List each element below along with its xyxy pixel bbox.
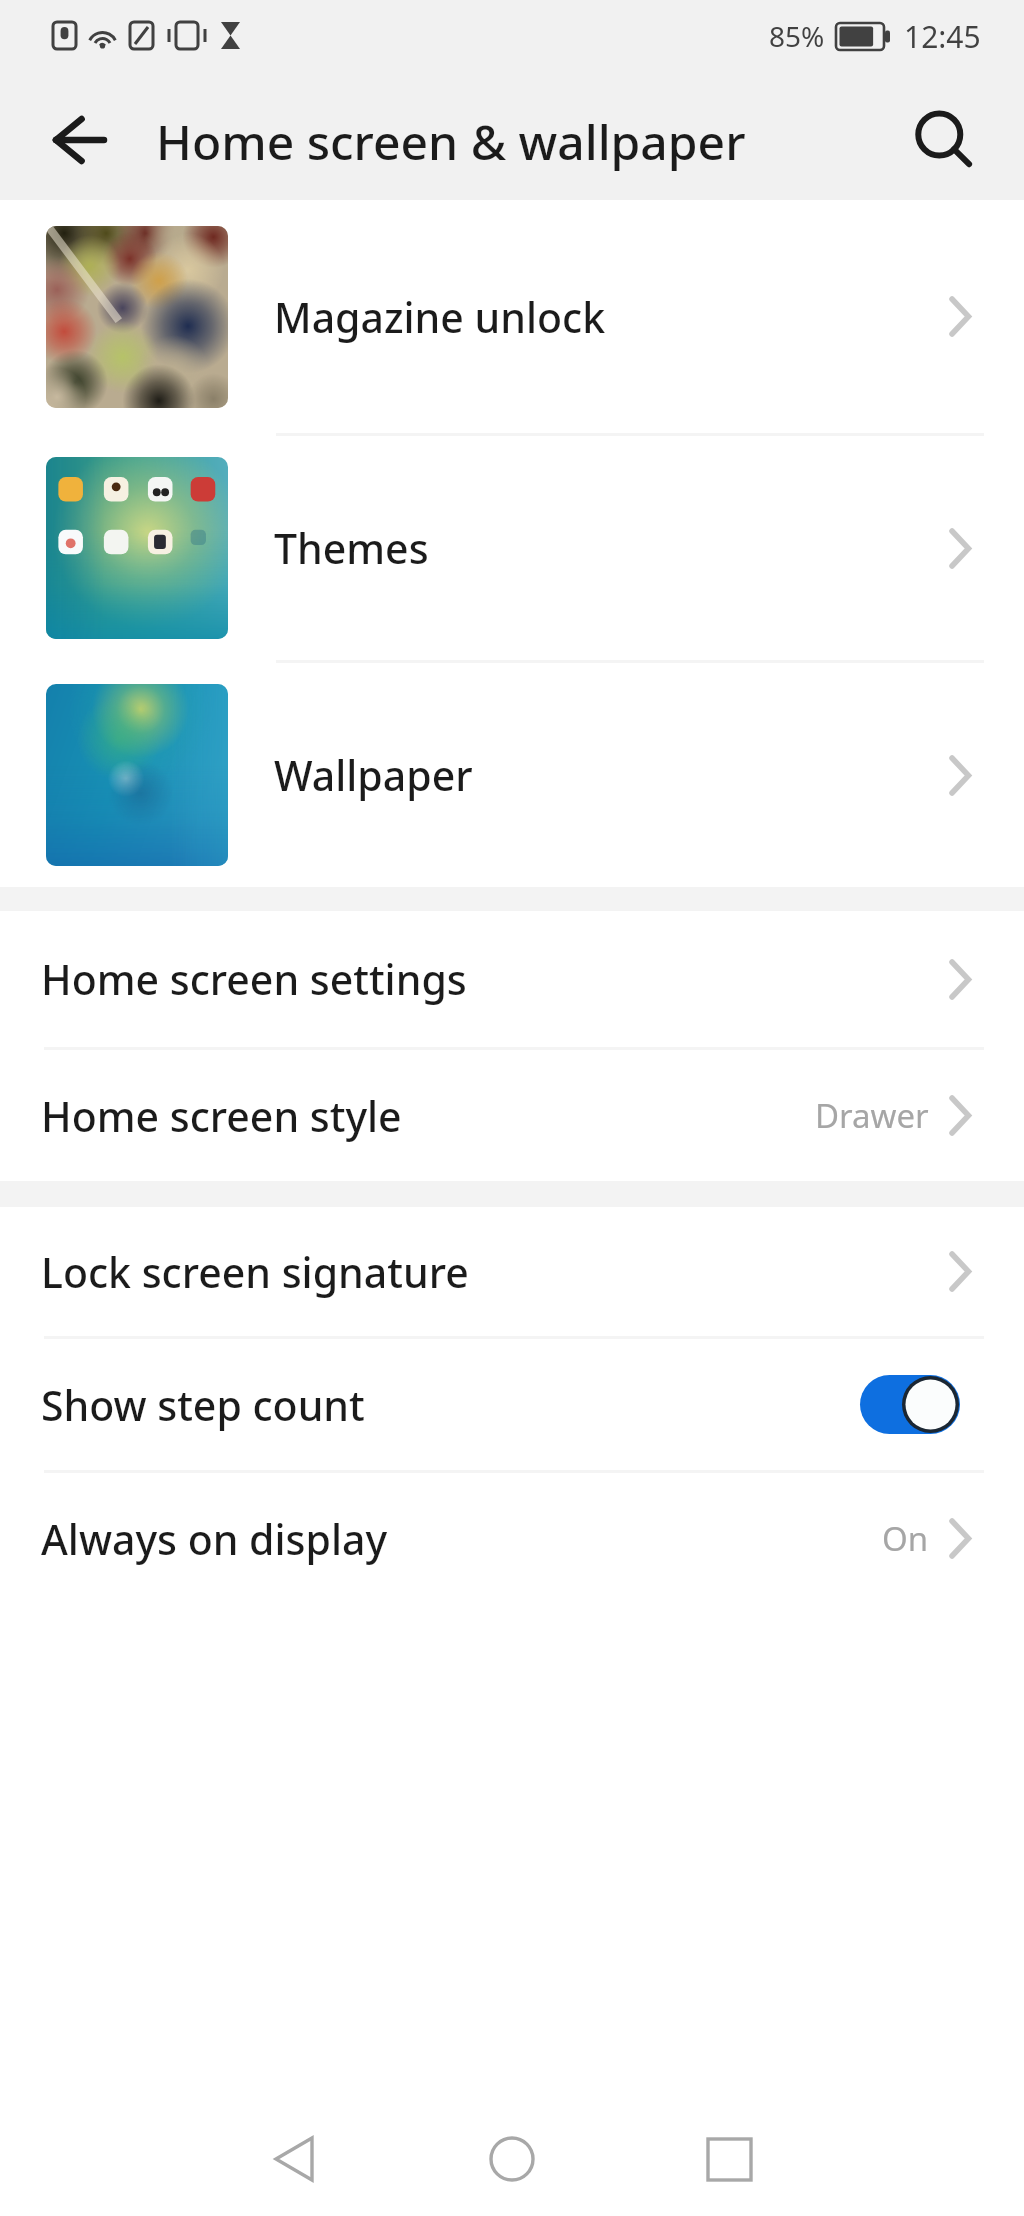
button[interactable]: Back [234, 2102, 354, 2216]
staticText: 85% [769, 17, 825, 55]
button[interactable]: Show step count [0, 1339, 1024, 1470]
staticText: Lock screen signature [41, 1244, 469, 1300]
staticText: Show step count [41, 1377, 365, 1433]
staticText: Themes [274, 520, 429, 576]
button[interactable]: Always on display [0, 1473, 1024, 1604]
staticText: Drawer [815, 1093, 929, 1138]
button[interactable]: Back [37, 98, 121, 182]
staticText: Home screen & wallpaper [156, 109, 746, 174]
button[interactable]: Wallpaper [0, 663, 1024, 887]
button[interactable]: Themes [0, 436, 1024, 660]
button[interactable]: Magazine unlock [0, 200, 1024, 433]
button[interactable]: Home screen style [0, 1050, 1024, 1181]
staticText: Home screen style [41, 1088, 402, 1144]
staticText: Wallpaper [274, 747, 473, 803]
staticText: 12:45 [904, 16, 981, 57]
staticText: Home screen settings [41, 951, 467, 1007]
staticText: On [882, 1516, 929, 1561]
button[interactable]: Recents [669, 2102, 789, 2216]
staticText: Always on display [41, 1511, 388, 1567]
button[interactable]: Home [452, 2102, 572, 2216]
button[interactable]: Home screen settings [0, 911, 1024, 1047]
button[interactable]: Lock screen signature [0, 1207, 1024, 1336]
button[interactable]: Search [901, 98, 985, 182]
staticText: Magazine unlock [274, 289, 606, 345]
